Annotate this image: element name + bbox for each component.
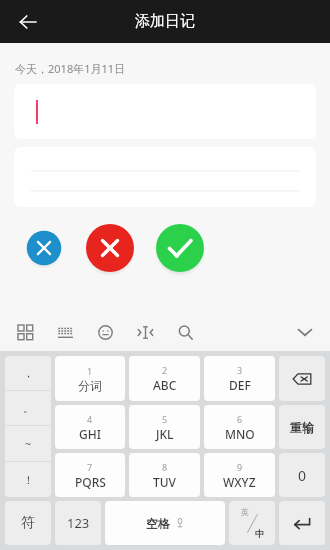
staticText: 6: [237, 413, 243, 425]
button[interactable]: Back: [10, 4, 46, 40]
staticText: 8: [162, 461, 168, 473]
button[interactable]: Cancel: [26, 230, 62, 266]
staticText: PQRS: [75, 474, 106, 490]
staticText: GHI: [79, 426, 101, 442]
button[interactable]: 9: [204, 453, 275, 497]
button[interactable]: 8: [129, 453, 200, 497]
staticText: 0: [298, 466, 307, 485]
button[interactable]: Move cursor: [132, 319, 158, 345]
button[interactable]: 空格: [105, 501, 225, 545]
staticText: 2: [162, 364, 168, 376]
staticText: 1: [87, 365, 93, 377]
staticText: DEF: [229, 377, 251, 393]
staticText: 7: [87, 461, 93, 473]
staticText: 空格: [146, 516, 170, 531]
staticText: 中: [255, 528, 264, 539]
button[interactable]: [14, 84, 316, 139]
button[interactable]: Confirm: [155, 223, 205, 273]
staticText: ~: [25, 436, 32, 451]
button[interactable]: Search: [172, 319, 198, 345]
button[interactable]: ~: [5, 426, 51, 461]
button[interactable]: Switch language: [229, 501, 275, 545]
staticText: 重输: [290, 420, 314, 435]
button[interactable]: 。: [5, 391, 51, 425]
staticText: 123: [67, 514, 90, 532]
button[interactable]: 1: [55, 356, 125, 401]
staticText: ！: [23, 473, 34, 487]
button[interactable]: Emoji: [92, 319, 118, 345]
button[interactable]: 0: [279, 453, 325, 497]
button[interactable]: ，: [5, 356, 51, 390]
staticText: 今天，2018年1月11日: [15, 61, 126, 76]
button[interactable]: Keyboard: [52, 319, 78, 345]
button[interactable]: Apps: [12, 319, 38, 345]
staticText: TUV: [153, 474, 176, 490]
button[interactable]: Delete: [85, 223, 135, 273]
button[interactable]: 7: [55, 453, 125, 497]
staticText: ，: [23, 366, 34, 380]
button[interactable]: 4: [55, 405, 125, 449]
button[interactable]: 符: [5, 501, 51, 545]
staticText: 4: [87, 413, 93, 425]
button[interactable]: 5: [129, 405, 200, 449]
button[interactable]: 3: [204, 356, 275, 401]
button[interactable]: Enter: [279, 501, 325, 545]
button[interactable]: Hide keyboard: [292, 319, 318, 345]
button[interactable]: ！: [5, 462, 51, 497]
staticText: 。: [23, 401, 34, 415]
staticText: JKL: [156, 426, 174, 442]
staticText: 分词: [78, 378, 102, 393]
staticText: MNO: [225, 426, 255, 442]
button[interactable]: 123: [55, 501, 101, 545]
button[interactable]: 2: [129, 356, 200, 401]
staticText: ABC: [153, 377, 177, 393]
button[interactable]: Backspace: [279, 356, 325, 401]
staticText: 9: [237, 461, 243, 473]
staticText: 添加日记: [135, 12, 195, 31]
staticText: WXYZ: [223, 474, 256, 490]
staticText: 符: [21, 514, 35, 532]
staticText: 5: [162, 413, 168, 425]
staticText: 英: [241, 507, 249, 517]
button[interactable]: 重输: [279, 405, 325, 449]
button[interactable]: 6: [204, 405, 275, 449]
staticText: 3: [237, 364, 243, 376]
